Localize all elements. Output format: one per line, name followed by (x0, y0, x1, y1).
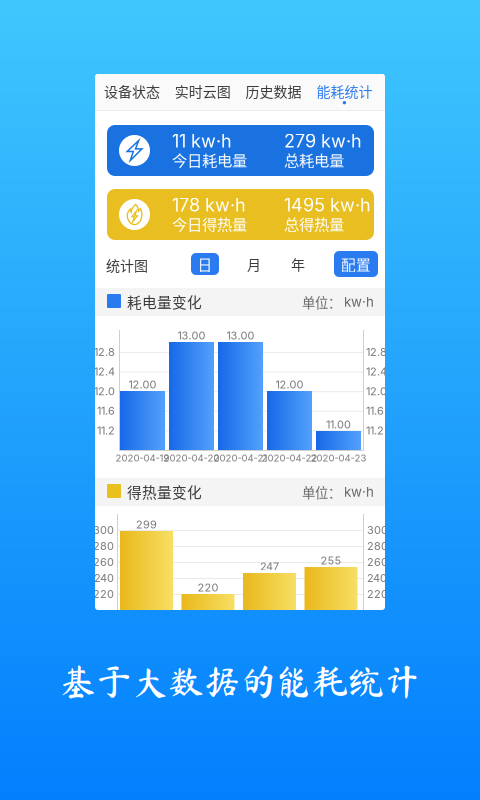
staticText: 历史数据 (246, 81, 302, 101)
staticText: 2020-04-23 (310, 452, 366, 464)
staticText: 2020-04-19 (115, 452, 169, 464)
staticText: 日 (197, 253, 212, 275)
staticText: kw·h (344, 294, 374, 310)
staticText: 统计图 (106, 255, 148, 275)
staticText: 2020-04-20 (163, 452, 219, 464)
staticText: 基于大数据的能耗统计 (60, 663, 420, 699)
button[interactable]: 年 (285, 253, 311, 275)
staticText: 12.8 (94, 345, 115, 359)
staticText: 12.4 (366, 365, 387, 378)
staticText: 240 (367, 571, 387, 585)
button[interactable]: 月 (241, 253, 267, 275)
staticText: 配置 (341, 253, 371, 275)
staticText: 得热量变化 (127, 481, 202, 502)
staticText: 12.0 (94, 385, 115, 398)
staticText: 300 (367, 523, 388, 537)
staticText: 今日得热量 (172, 212, 247, 235)
staticText: 280 (367, 539, 388, 553)
staticText: 11.2 (97, 424, 115, 437)
staticText: 2020-04-22 (261, 452, 317, 464)
staticText: 11.2 (366, 424, 384, 437)
staticText: 能耗统计 (316, 81, 372, 101)
staticText: 240 (94, 571, 114, 585)
staticText: 实时云图 (175, 81, 231, 101)
button[interactable]: 日 (191, 253, 219, 275)
staticText: 260 (367, 555, 388, 569)
button[interactable]: 历史数据 (239, 74, 309, 110)
staticText: 今日耗电量 (172, 148, 247, 171)
staticText: 220 (197, 581, 218, 594)
staticText: 2020-04-21 (213, 452, 267, 464)
staticText: 总得热量 (284, 212, 344, 235)
staticText: 255 (320, 554, 341, 567)
button[interactable]: 设备状态 (97, 74, 167, 110)
staticText: 300 (93, 523, 114, 537)
staticText: 11.6 (97, 404, 115, 417)
staticText: 279 kw·h (284, 130, 362, 152)
staticText: 耗电量变化 (127, 291, 202, 312)
staticText: 单位： (302, 292, 341, 312)
staticText: 12.00 (128, 378, 156, 391)
staticText: 260 (93, 555, 114, 569)
staticText: 年 (291, 254, 305, 274)
staticText: 月 (247, 254, 261, 274)
staticText: 12.4 (94, 365, 115, 378)
staticText: 12.0 (366, 385, 387, 398)
button[interactable]: 11 kw·h (107, 125, 374, 176)
staticText: kw·h (344, 484, 374, 500)
staticText: 11 kw·h (172, 130, 232, 152)
staticText: 247 (260, 560, 279, 573)
staticText: 单位： (302, 482, 341, 502)
staticText: 总耗电量 (284, 148, 344, 171)
staticText: 设备状态 (104, 81, 160, 101)
staticText: 178 kw·h (172, 194, 246, 216)
button[interactable]: 实时云图 (168, 74, 238, 110)
staticText: 12.8 (366, 345, 387, 359)
staticText: 13.00 (177, 329, 205, 342)
staticText: 13.00 (226, 329, 254, 342)
staticText: 1495 kw·h (284, 194, 371, 216)
staticText: 11.6 (366, 404, 384, 417)
button[interactable]: 178 kw·h (107, 189, 374, 240)
staticText: 220 (93, 587, 114, 601)
staticText: 220 (367, 587, 388, 601)
staticText: 11.00 (326, 418, 351, 431)
button[interactable]: 配置 (334, 251, 378, 277)
button[interactable]: 能耗统计 (309, 74, 379, 110)
staticText: 280 (93, 539, 114, 553)
staticText: 12.00 (275, 378, 303, 391)
staticText: 299 (136, 518, 157, 531)
